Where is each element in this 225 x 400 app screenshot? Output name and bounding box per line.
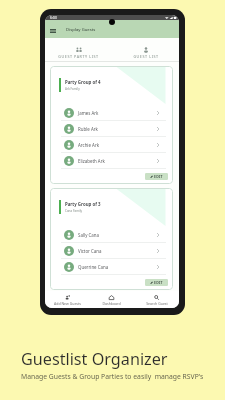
button[interactable]: Search Guest: [134, 291, 179, 308]
button[interactable]: EDIT: [145, 173, 168, 180]
staticText: GUEST PARTY LIST: [58, 54, 99, 59]
staticText: Sally Cana: [78, 232, 99, 238]
staticText: Party Group of 4: [65, 79, 101, 85]
staticText: Party Group of 3: [65, 201, 101, 207]
staticText: Search Guest: [146, 301, 168, 306]
button[interactable]: GUEST LIST: [112, 38, 179, 61]
button[interactable]: Dashboard: [89, 291, 134, 308]
staticText: James Ark: [78, 110, 99, 116]
button[interactable]: Elizabeth Ark: [61, 153, 166, 168]
button[interactable]: Sally Cana: [61, 227, 166, 242]
button[interactable]: Querrine Cana: [61, 259, 166, 274]
button[interactable]: GUEST PARTY LIST: [45, 38, 112, 61]
staticText: Victor Cana: [78, 248, 102, 254]
button[interactable]: Ruble Ark: [61, 121, 166, 136]
button[interactable]: James Ark: [61, 105, 166, 120]
button[interactable]: EDIT: [145, 279, 168, 286]
staticText: Dashboard: [102, 301, 121, 306]
staticText: Querrine Cana: [78, 264, 109, 270]
staticText: Display Guests: [66, 27, 96, 33]
staticText: Manage Guests & Group Parties to easily …: [21, 372, 204, 381]
button[interactable]: Archie Ark: [61, 137, 166, 152]
staticText: Ruble Ark: [78, 126, 98, 132]
staticText: GUEST LIST: [133, 54, 159, 59]
button[interactable]: Victor Cana: [61, 243, 166, 258]
staticText: Cana Family: [65, 209, 83, 213]
staticText: Elizabeth Ark: [78, 158, 105, 164]
staticText: EDIT: [154, 174, 163, 179]
staticText: Add New Guests: [54, 301, 81, 306]
staticText: 6:03: [50, 15, 57, 20]
staticText: EDIT: [154, 280, 163, 285]
staticText: Archie Ark: [78, 142, 100, 148]
staticText: Ark Family: [65, 87, 80, 91]
button[interactable]: Open navigation menu: [47, 25, 58, 36]
button[interactable]: Add New Guests: [45, 291, 89, 308]
staticText: Guestlist Organizer: [21, 348, 168, 370]
